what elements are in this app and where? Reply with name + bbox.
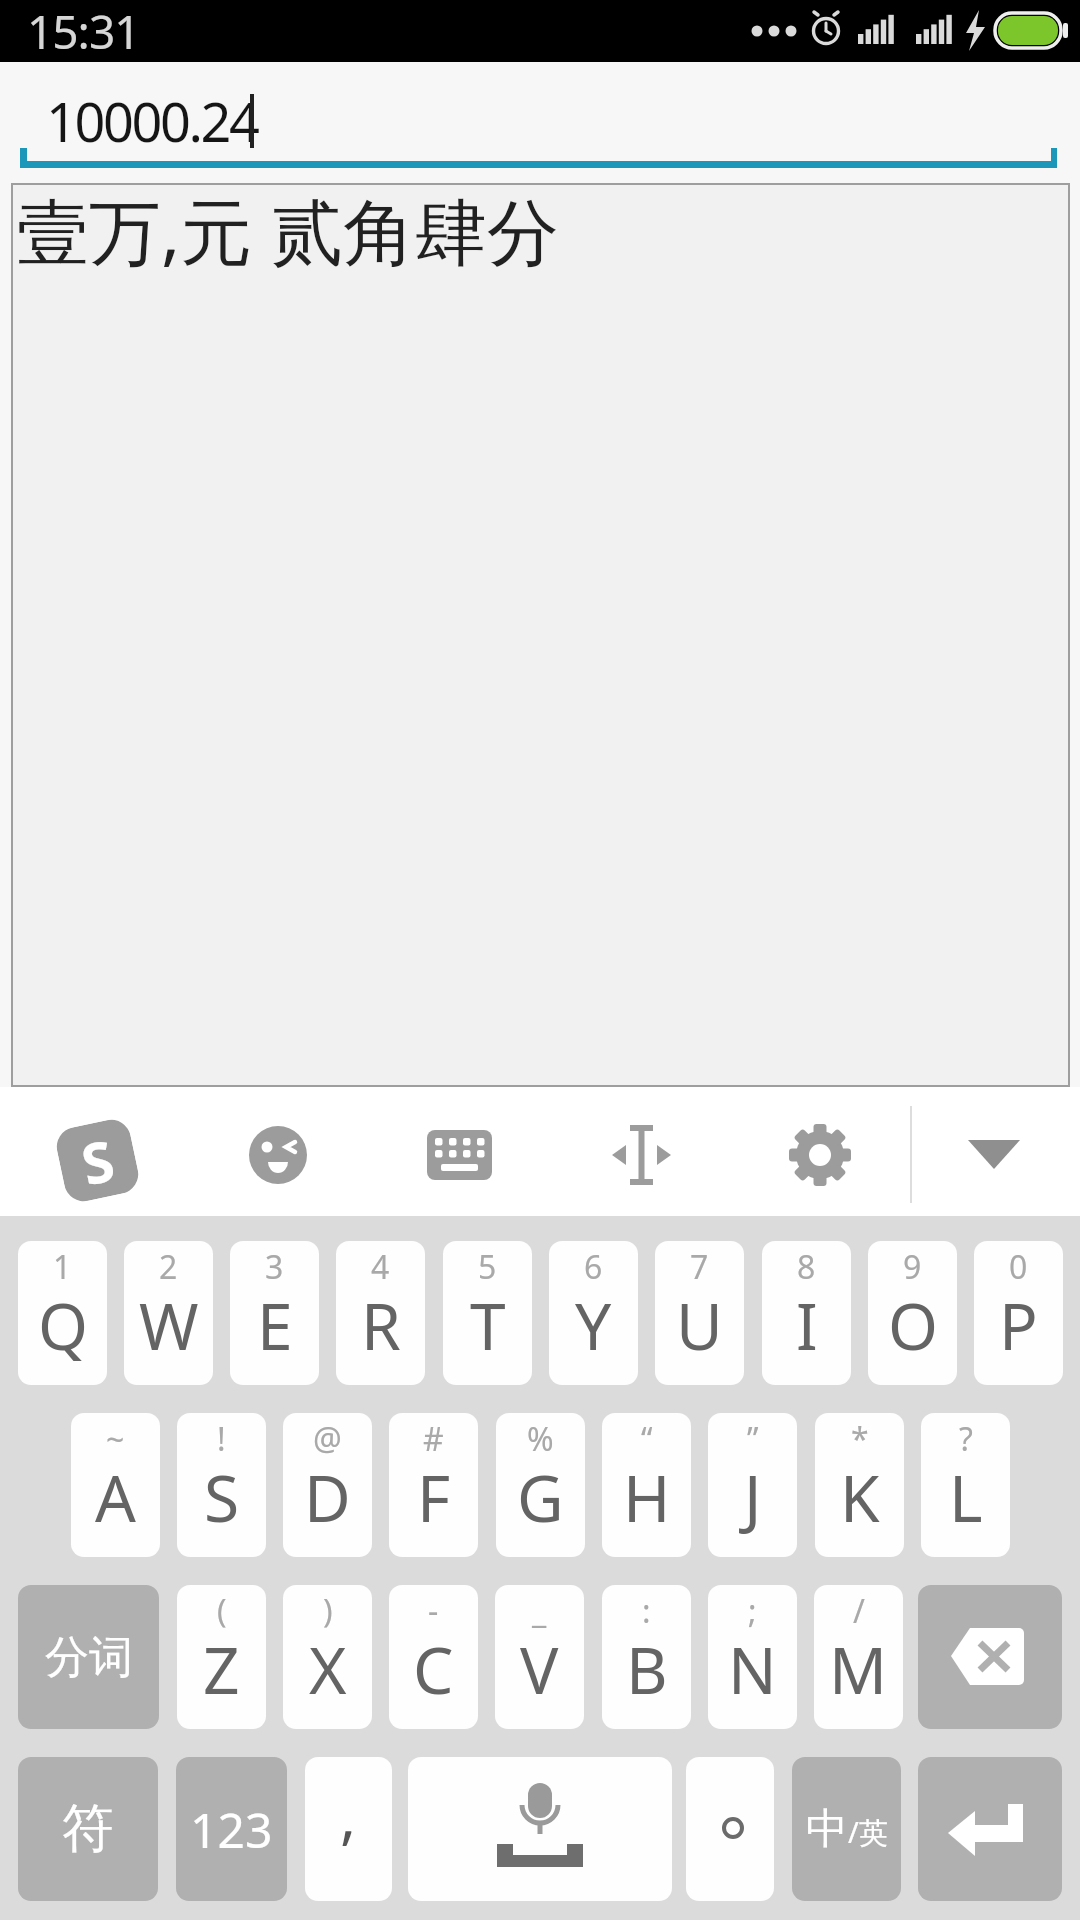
button[interactable] — [783, 1118, 858, 1193]
staticText: 6 — [584, 1245, 603, 1289]
staticText: @ — [313, 1417, 342, 1461]
staticText: O — [888, 1282, 938, 1369]
button[interactable]: ” — [708, 1413, 797, 1557]
staticText: 中/英 — [806, 1803, 888, 1856]
staticText: 4 — [371, 1245, 390, 1289]
staticText: J — [744, 1454, 762, 1541]
button[interactable]: - — [389, 1585, 478, 1729]
button[interactable]: ~ — [71, 1413, 160, 1557]
staticText: 符 — [62, 1796, 114, 1862]
button[interactable]: ; — [708, 1585, 797, 1729]
button[interactable]: 8 — [762, 1241, 851, 1385]
staticText: 10000.24 — [46, 84, 258, 158]
staticText: H — [623, 1454, 671, 1541]
button[interactable]: 中/英 — [792, 1757, 901, 1901]
staticText: W — [139, 1282, 199, 1369]
staticText: Z — [203, 1626, 240, 1713]
button[interactable]: * — [815, 1413, 904, 1557]
staticText: I — [796, 1282, 818, 1369]
staticText: T — [470, 1282, 506, 1369]
button[interactable]: _ — [495, 1585, 584, 1729]
staticText: 123 — [190, 1797, 273, 1862]
staticText: ) — [323, 1589, 333, 1633]
staticText: # — [423, 1417, 444, 1461]
staticText: L — [949, 1454, 983, 1541]
staticText: ; — [748, 1589, 757, 1633]
staticText: ? — [959, 1417, 973, 1461]
button[interactable]: 分词 — [18, 1585, 159, 1729]
staticText: 0 — [1009, 1245, 1028, 1289]
staticText: 5 — [478, 1245, 497, 1289]
button[interactable]: : — [602, 1585, 691, 1729]
staticText: ( — [217, 1589, 227, 1633]
button[interactable] — [918, 1585, 1062, 1729]
button[interactable] — [918, 1757, 1062, 1901]
staticText: 分词 — [45, 1630, 133, 1685]
staticText: _ — [532, 1589, 547, 1633]
staticText: S — [74, 1121, 120, 1200]
staticText: U — [676, 1282, 723, 1369]
button[interactable]: 4 — [336, 1241, 425, 1385]
staticText: V — [520, 1626, 559, 1713]
staticText: 3 — [265, 1245, 284, 1289]
staticText: M — [829, 1626, 888, 1713]
button[interactable]: 符 — [18, 1757, 158, 1901]
button[interactable]: “ — [602, 1413, 691, 1557]
staticText: : — [642, 1589, 651, 1633]
staticText: P — [999, 1282, 1038, 1369]
button[interactable]: 123 — [176, 1757, 287, 1901]
staticText: D — [304, 1454, 351, 1541]
staticText: A — [95, 1454, 136, 1541]
staticText: N — [728, 1626, 777, 1713]
button[interactable] — [408, 1757, 672, 1901]
button[interactable]: 3 — [230, 1241, 319, 1385]
button[interactable]: # — [389, 1413, 478, 1557]
staticText: F — [417, 1454, 451, 1541]
staticText: Q — [38, 1282, 88, 1369]
staticText: 壹万,元 贰角肆分 — [17, 181, 560, 279]
staticText: S — [204, 1454, 240, 1541]
button[interactable] — [422, 1118, 497, 1193]
staticText: Y — [575, 1282, 612, 1369]
staticText: “ — [641, 1417, 653, 1461]
staticText: 1 — [53, 1245, 72, 1289]
button[interactable]: @ — [283, 1413, 372, 1557]
staticText: 15:31 — [27, 0, 140, 62]
staticText: K — [840, 1454, 880, 1541]
staticText: 8 — [797, 1245, 816, 1289]
button[interactable]: 1 — [18, 1241, 107, 1385]
button[interactable]: 6 — [549, 1241, 638, 1385]
staticText: ” — [747, 1417, 759, 1461]
button[interactable]: 9 — [868, 1241, 957, 1385]
staticText: * — [851, 1417, 869, 1461]
button[interactable]: ) — [283, 1585, 372, 1729]
staticText: 9 — [903, 1245, 922, 1289]
button[interactable]: ( — [177, 1585, 266, 1729]
button[interactable] — [686, 1757, 774, 1901]
button[interactable]: / — [814, 1585, 903, 1729]
staticText: / — [853, 1589, 865, 1633]
staticText: 7 — [690, 1245, 709, 1289]
button[interactable]: % — [496, 1413, 585, 1557]
staticText: C — [413, 1626, 454, 1713]
button[interactable]: , — [305, 1757, 392, 1901]
button[interactable] — [604, 1118, 679, 1193]
button[interactable]: S — [53, 1116, 142, 1205]
staticText: X — [309, 1626, 347, 1713]
staticText: R — [361, 1282, 401, 1369]
staticText: ~ — [106, 1417, 125, 1461]
button[interactable]: ? — [921, 1413, 1010, 1557]
button[interactable] — [957, 1118, 1032, 1193]
button[interactable]: ! — [177, 1413, 266, 1557]
button[interactable]: 2 — [124, 1241, 213, 1385]
button[interactable]: 0 — [974, 1241, 1063, 1385]
staticText: - — [428, 1589, 439, 1633]
staticText: 2 — [159, 1245, 178, 1289]
staticText: G — [517, 1454, 564, 1541]
button[interactable]: 5 — [443, 1241, 532, 1385]
staticText: B — [626, 1626, 668, 1713]
button[interactable]: 7 — [655, 1241, 744, 1385]
button[interactable] — [240, 1118, 315, 1193]
staticText: E — [257, 1282, 293, 1369]
staticText: ! — [217, 1417, 226, 1461]
